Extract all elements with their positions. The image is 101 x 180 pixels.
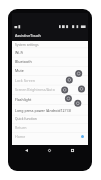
button[interactable]: Lock Screen [12,76,88,85]
staticText: Wi-Fi [15,50,24,55]
button[interactable]: Quick function [12,115,88,123]
staticText: Bluetooth [15,59,32,64]
button[interactable]: Return [12,123,88,132]
staticText: Flashlight [15,97,32,102]
staticText: Lock Screen [15,78,36,83]
button[interactable]: Wi-Fi [12,48,88,57]
button[interactable]: Screen Brightness/Auto [12,85,88,94]
button[interactable]: Back [22,146,30,154]
staticText: Screen Brightness/Auto [15,87,55,92]
button[interactable]: Mute [12,66,88,75]
staticText: Mute [15,68,24,73]
button[interactable]: Home [12,132,88,141]
button[interactable]: Long press power (Android12/13) [12,105,88,115]
button[interactable]: Recents [68,146,76,154]
staticText: Home [15,134,26,139]
staticText: Long press power (Android12/13) [15,108,72,113]
button[interactable]: Home [45,146,53,154]
staticText: Return [15,125,27,130]
staticText: Quick function [15,117,37,121]
button[interactable]: Bluetooth [12,57,88,66]
button[interactable]: Flashlight [12,94,88,104]
staticText: AssistiveTouch [15,33,41,38]
staticText: System settings [15,43,39,47]
button[interactable]: System settings [12,41,88,48]
